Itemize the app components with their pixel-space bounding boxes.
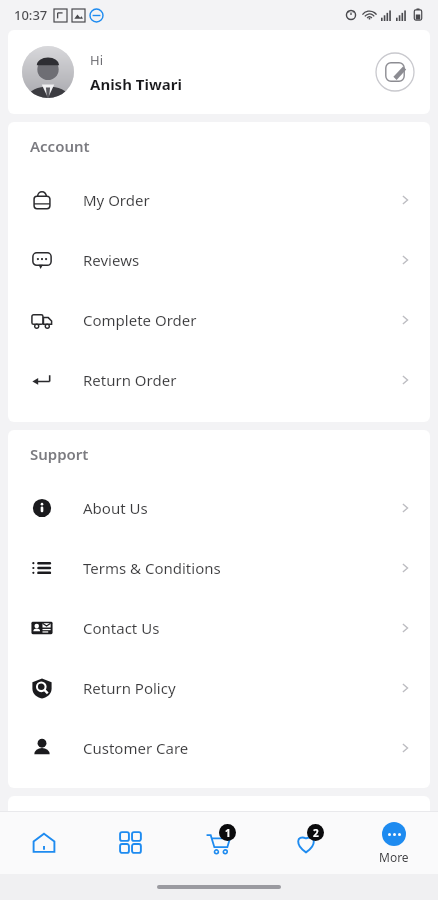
staticText: My Order [83, 190, 150, 210]
button[interactable]: Return Policy [8, 658, 430, 718]
button[interactable]: Wishlist [262, 812, 350, 874]
button[interactable]: Terms & Conditions [8, 538, 430, 598]
staticText: 10:37 [14, 6, 48, 24]
staticText: Complete Order [83, 310, 197, 330]
staticText: Return Policy [83, 678, 176, 698]
staticText: 1 [225, 826, 231, 840]
button[interactable]: Complete Order [8, 290, 430, 350]
button[interactable]: Home [0, 812, 87, 874]
button[interactable]: Reviews [8, 230, 430, 290]
button[interactable]: Customer Care [8, 718, 430, 778]
button[interactable]: Edit profile [374, 51, 416, 93]
button[interactable]: More [350, 812, 438, 874]
button[interactable]: Hi [8, 30, 430, 114]
staticText: Account [30, 136, 90, 156]
button[interactable]: Contact Us [8, 598, 430, 658]
staticText: Customer Care [83, 738, 189, 758]
button[interactable]: About Us [8, 478, 430, 538]
staticText: Anish Tiwari [90, 74, 182, 94]
staticText: Reviews [83, 250, 140, 270]
staticText: More [379, 849, 409, 865]
staticText: Support [30, 444, 89, 464]
staticText: Return Order [83, 370, 177, 390]
button[interactable]: Return Order [8, 350, 430, 410]
staticText: Terms & Conditions [83, 558, 221, 578]
staticText: Hi [90, 51, 103, 69]
staticText: 2 [313, 826, 319, 840]
staticText: Logout [83, 826, 133, 846]
button[interactable]: Cart [174, 812, 262, 874]
staticText: Contact Us [83, 618, 160, 638]
button[interactable]: Logout [8, 806, 430, 866]
button[interactable]: My Order [8, 170, 430, 230]
button[interactable]: Categories [87, 812, 174, 874]
staticText: About Us [83, 498, 148, 518]
